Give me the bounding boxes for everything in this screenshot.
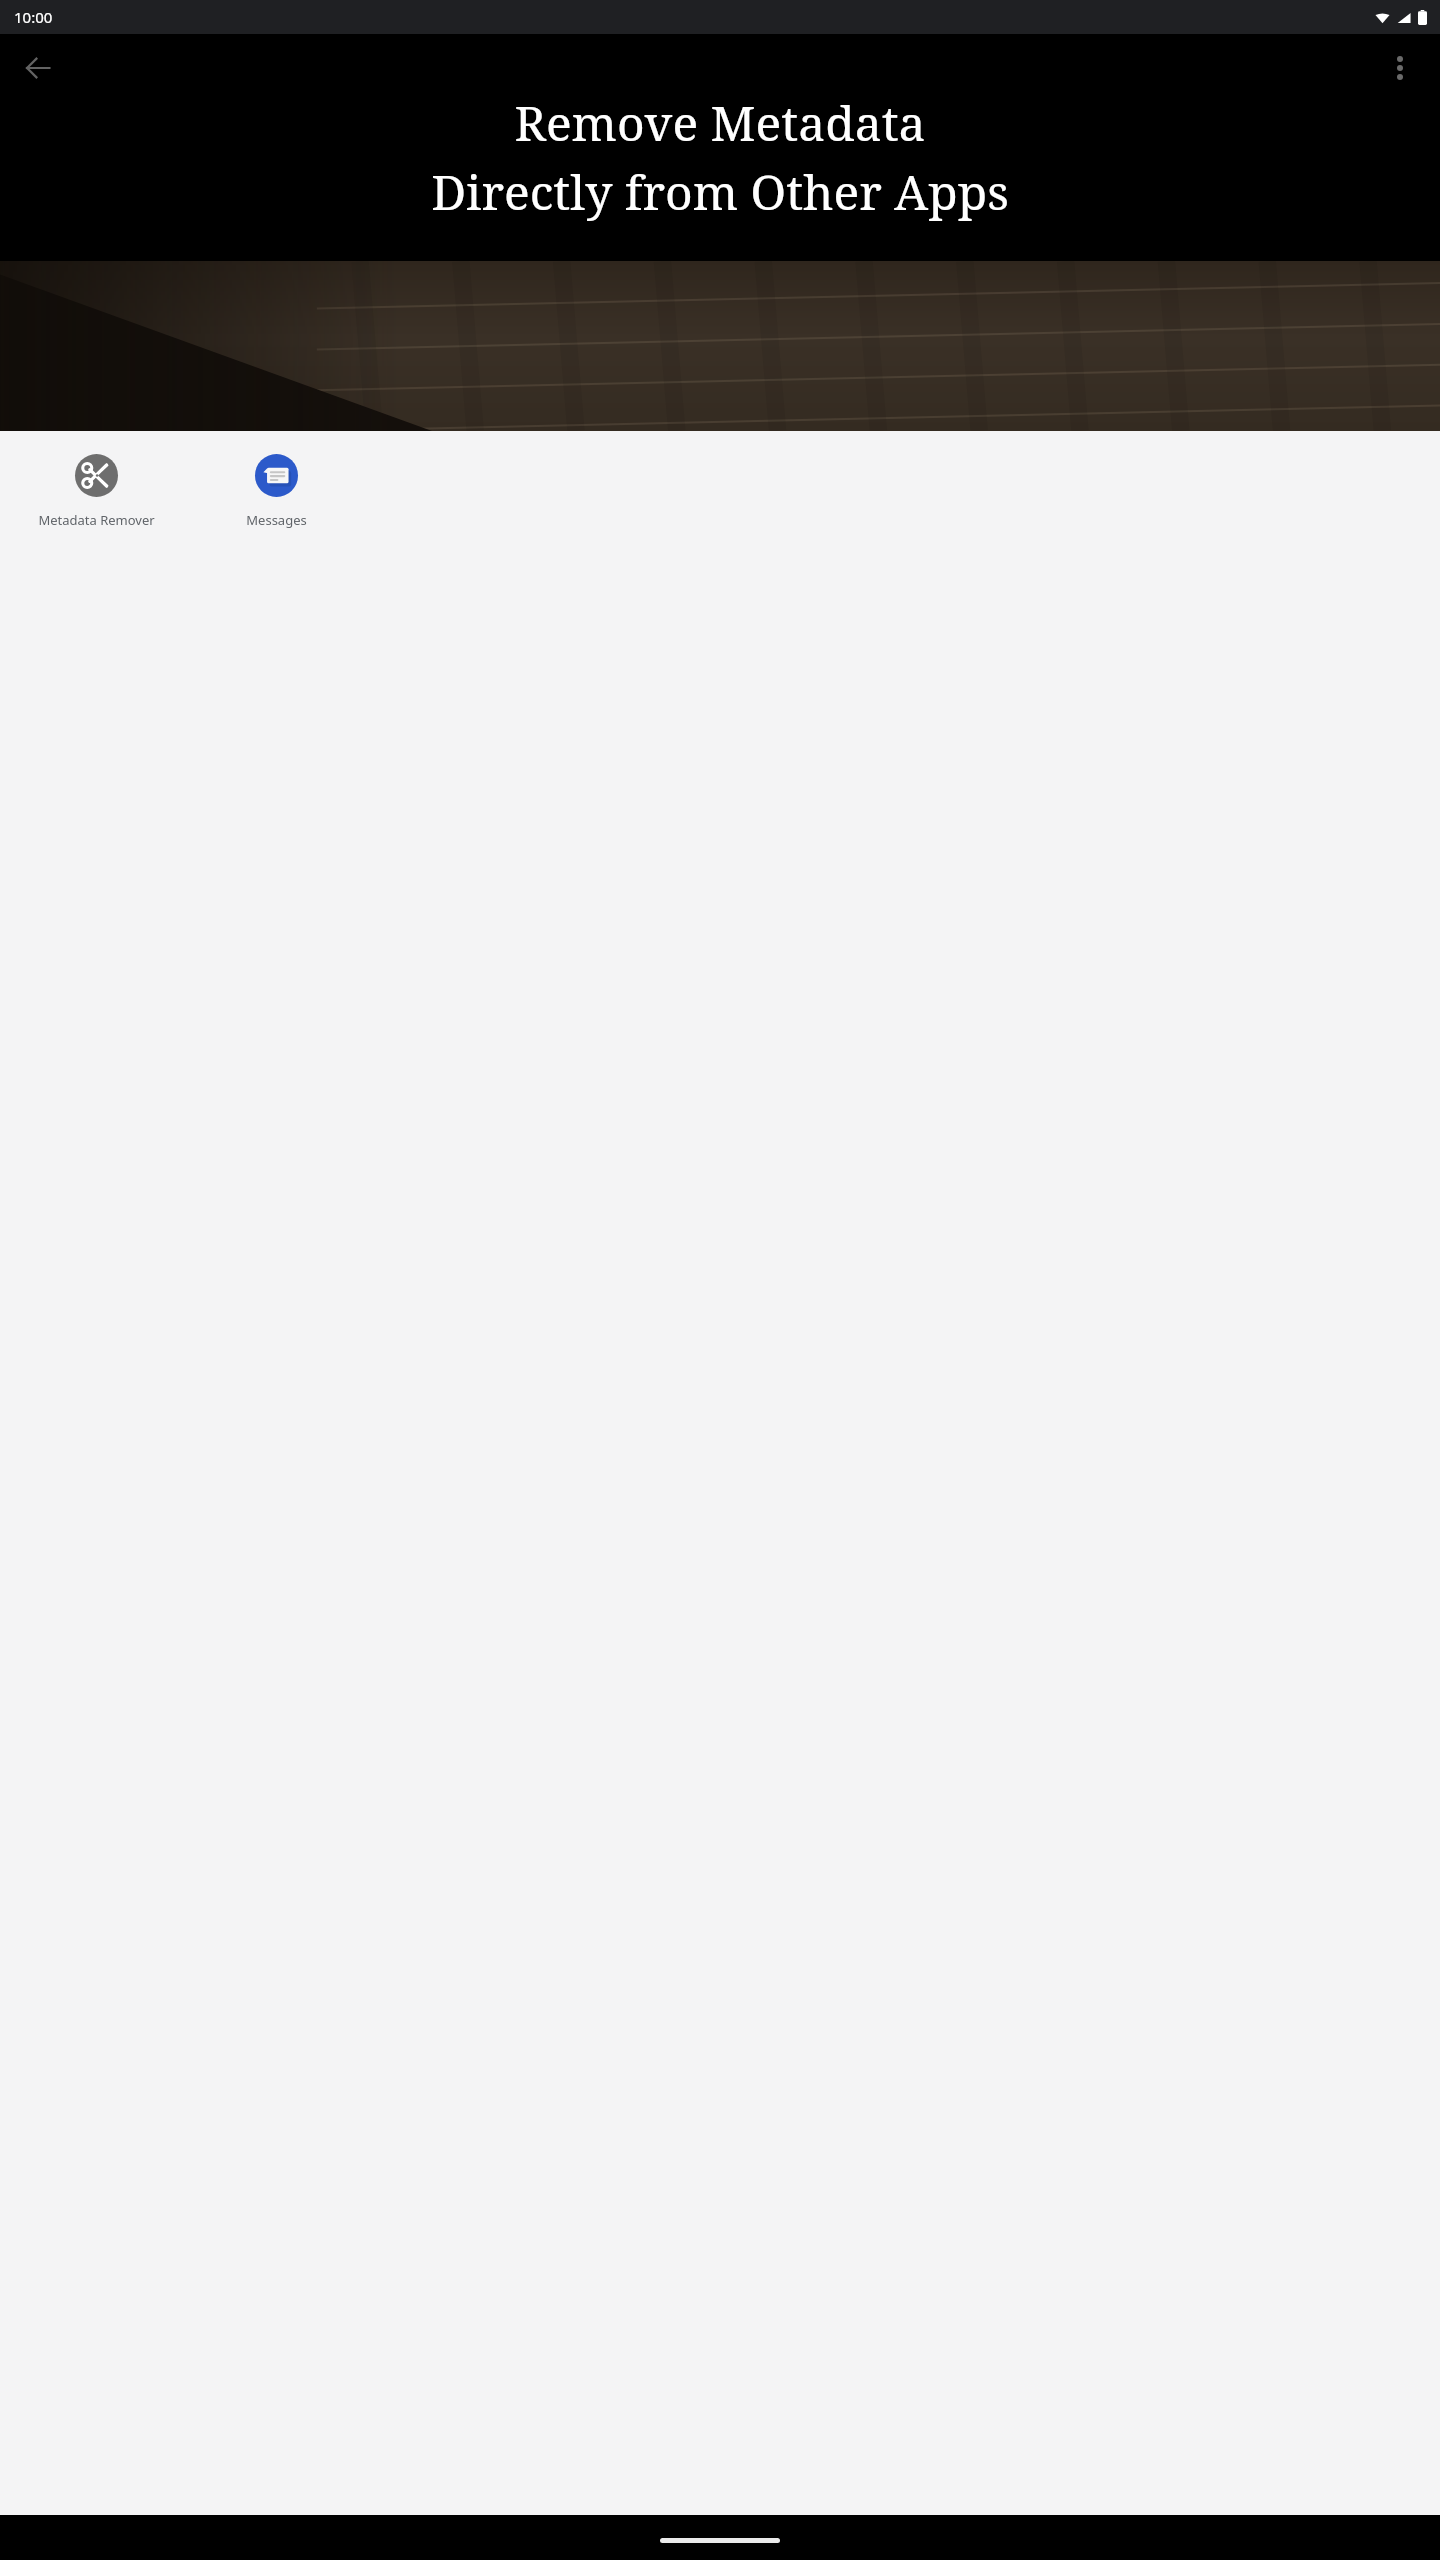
button[interactable]: Messages [186, 448, 366, 535]
button[interactable]: Back [10, 40, 66, 96]
staticText: Remove Metadata [514, 90, 926, 155]
staticText: 10:00 [14, 7, 53, 27]
button[interactable]: More options [1372, 40, 1428, 96]
staticText: Messages [246, 511, 307, 529]
button[interactable]: Metadata Remover [6, 448, 186, 535]
staticText: Metadata Remover [38, 511, 155, 529]
staticText: Directly from Other Apps [431, 159, 1009, 224]
